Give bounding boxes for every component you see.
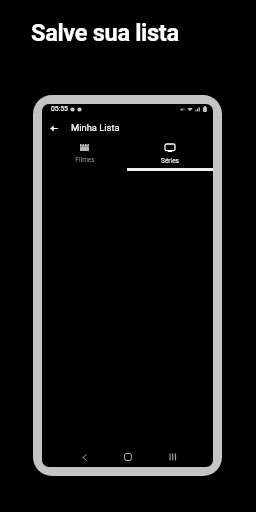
staticText: 05:55 (51, 105, 68, 113)
button[interactable]: Back (45, 119, 63, 137)
staticText: Filmes (75, 156, 95, 164)
button[interactable]: Filmes (42, 139, 127, 170)
staticText: Minha Lista (71, 122, 120, 133)
button[interactable]: Recent apps (150, 446, 194, 467)
button[interactable]: Home (106, 446, 150, 467)
staticText: Salve sua lista (31, 19, 179, 47)
button[interactable]: Back (63, 446, 106, 467)
staticText: Séries (161, 157, 179, 165)
button[interactable]: Séries (127, 139, 213, 170)
